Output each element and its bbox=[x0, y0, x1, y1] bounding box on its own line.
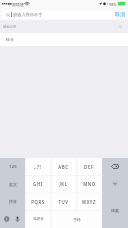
button[interactable]: 请输入商品名字 bbox=[2, 10, 112, 19]
button[interactable]: 英文 bbox=[0, 175, 25, 193]
button[interactable]: 123 bbox=[0, 158, 25, 175]
button[interactable]: JKL bbox=[50, 175, 76, 193]
staticText: 空格 bbox=[73, 217, 81, 222]
button[interactable]: Switch keyboard bbox=[0, 210, 25, 228]
staticText: 请输入商品名字 bbox=[13, 12, 43, 17]
button[interactable]: ,.?! bbox=[25, 158, 50, 175]
button[interactable]: 搜索 bbox=[102, 193, 128, 228]
staticText: DEF bbox=[84, 164, 94, 170]
staticText: MNO bbox=[83, 181, 96, 187]
staticText: 枕头 bbox=[6, 37, 14, 42]
button[interactable]: DEF bbox=[76, 158, 102, 175]
button[interactable]: 枕头 bbox=[0, 33, 128, 46]
staticText: TUV bbox=[58, 199, 69, 205]
staticText: 取消 bbox=[115, 11, 125, 17]
staticText: 中国联通 bbox=[8, 2, 24, 7]
button[interactable]: TUV bbox=[50, 193, 76, 210]
button[interactable]: WXYZ bbox=[76, 193, 102, 210]
button[interactable]: 选拼音 bbox=[25, 210, 51, 228]
staticText: 123 bbox=[9, 164, 17, 170]
button[interactable]: Clear search history bbox=[117, 23, 124, 30]
button[interactable]: MNO bbox=[76, 175, 102, 193]
staticText: 英文 bbox=[9, 182, 17, 187]
staticText: PQRS bbox=[31, 199, 45, 205]
staticText: 拼音 bbox=[9, 199, 17, 204]
staticText: JKL bbox=[59, 181, 68, 187]
button[interactable]: GHI bbox=[25, 175, 50, 193]
staticText: 搜索 bbox=[111, 208, 119, 213]
staticText: 98% bbox=[109, 2, 117, 7]
staticText: WXYZ bbox=[82, 199, 96, 205]
button[interactable]: 拼音 bbox=[0, 193, 25, 210]
button[interactable]: PQRS bbox=[25, 193, 50, 210]
button[interactable]: Emoji bbox=[102, 175, 128, 193]
button[interactable]: ABC bbox=[50, 158, 76, 175]
button[interactable]: Backspace bbox=[102, 158, 128, 175]
staticText: ,.?! bbox=[34, 164, 41, 170]
button[interactable]: 空格 bbox=[51, 210, 102, 228]
staticText: ABC bbox=[58, 164, 69, 170]
staticText: GHI bbox=[33, 181, 43, 187]
button[interactable]: 取消 bbox=[115, 8, 125, 20]
staticText: 选拼音 bbox=[33, 217, 44, 222]
staticText: 搜索记录 bbox=[3, 25, 17, 29]
